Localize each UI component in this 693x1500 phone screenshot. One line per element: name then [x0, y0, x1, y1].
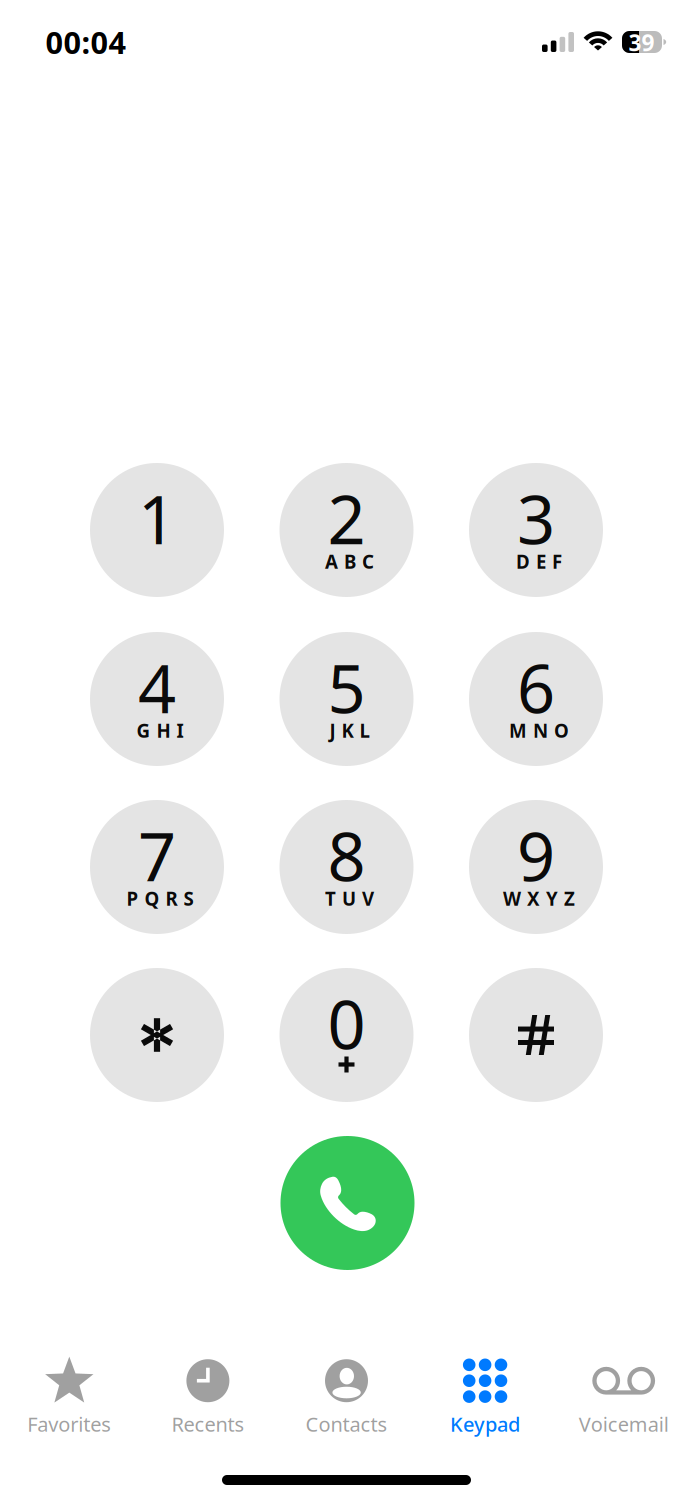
staticText: GHI — [136, 718, 183, 743]
button[interactable]: Voicemail — [554, 1358, 693, 1430]
staticText: 0 — [327, 979, 365, 1068]
button[interactable]: 8 — [279, 800, 413, 934]
button[interactable]: Recents — [139, 1358, 277, 1430]
button[interactable]: 1 — [90, 463, 224, 597]
button[interactable]: Pound — [469, 968, 603, 1102]
staticText: 39 — [628, 27, 654, 57]
staticText: 1 — [138, 474, 176, 563]
staticText: Voicemail — [579, 1411, 669, 1437]
staticText: 5 — [327, 643, 365, 732]
staticText: 8 — [327, 811, 365, 900]
staticText: 00:04 — [45, 22, 126, 62]
staticText: 6 — [517, 643, 555, 732]
button[interactable]: Star — [90, 968, 224, 1102]
button[interactable]: Favorites — [0, 1358, 139, 1430]
staticText: 4 — [138, 643, 176, 732]
staticText: MNO — [509, 718, 569, 743]
staticText: Recents — [171, 1411, 244, 1437]
staticText: 9 — [517, 811, 555, 900]
button[interactable]: Contacts — [277, 1358, 416, 1430]
staticText: Favorites — [27, 1411, 111, 1437]
button[interactable]: 5 — [279, 632, 413, 766]
button[interactable]: 6 — [469, 632, 603, 766]
staticText: 7 — [138, 811, 176, 900]
button[interactable]: 7 — [90, 800, 224, 934]
button[interactable]: 2 — [279, 463, 413, 597]
button[interactable]: 0 — [279, 968, 413, 1102]
button[interactable]: Keypad — [416, 1358, 554, 1430]
staticText: 2 — [327, 474, 365, 563]
button[interactable]: 4 — [90, 632, 224, 766]
staticText: TUV — [325, 886, 374, 911]
staticText: ABC — [325, 549, 374, 574]
staticText: JKL — [329, 718, 369, 743]
staticText: Contacts — [305, 1411, 387, 1437]
button[interactable]: 3 — [469, 463, 603, 597]
staticText: PQRS — [126, 886, 193, 911]
staticText: Keypad — [450, 1411, 520, 1437]
staticText: 3 — [517, 474, 555, 563]
staticText: DEF — [516, 549, 562, 574]
button[interactable]: 9 — [469, 800, 603, 934]
staticText: WXYZ — [503, 886, 575, 911]
button[interactable]: Call — [280, 1136, 414, 1270]
